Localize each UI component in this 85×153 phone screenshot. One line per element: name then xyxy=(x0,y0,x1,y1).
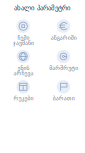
staticText: ჩემი ჯავშანი xyxy=(13,34,34,46)
button[interactable]: ანგარიში xyxy=(43,19,84,50)
staticText: ენის არჩევა xyxy=(13,65,33,76)
button[interactable]: რუკები xyxy=(3,80,43,110)
staticText: ბარათი xyxy=(52,95,74,102)
button[interactable]: ენის არჩევა xyxy=(3,50,43,80)
staticText: ახალი პარამეტრი xyxy=(14,4,71,12)
button[interactable]: ბარათი xyxy=(43,80,84,110)
staticText: მარშრუტი xyxy=(49,65,78,71)
button[interactable]: მარშრუტი xyxy=(43,50,84,80)
staticText: რუკები xyxy=(13,95,33,102)
button[interactable]: ჩემი ჯავშანი xyxy=(3,19,43,50)
staticText: ანგარიში xyxy=(50,34,76,41)
